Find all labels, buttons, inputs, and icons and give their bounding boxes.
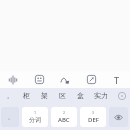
button[interactable]: 盒 — [71, 88, 89, 103]
button[interactable]: Voice input — [0, 71, 26, 88]
button[interactable]: Settings — [78, 71, 104, 88]
button[interactable]: 3 — [80, 107, 106, 127]
button[interactable]: 1 — [22, 107, 48, 127]
staticText: 3 — [92, 110, 95, 115]
staticText: 实力 — [94, 91, 108, 100]
staticText: T — [114, 74, 120, 86]
staticText: ABC — [58, 116, 70, 124]
staticText: 分词 — [29, 116, 41, 124]
staticText: 柜 — [23, 91, 30, 100]
staticText: 盒 — [77, 91, 84, 100]
button[interactable]: Expand candidates — [113, 88, 130, 103]
staticText: 区 — [59, 91, 66, 100]
button[interactable]: Stickers — [26, 71, 52, 88]
button[interactable]: 柜 — [17, 88, 35, 103]
button[interactable]: Handwriting — [52, 71, 78, 88]
button[interactable]: 实力 — [89, 88, 113, 103]
staticText: 架 — [41, 91, 48, 100]
button[interactable]: 2 — [51, 107, 77, 127]
button[interactable]: Backspace — [109, 107, 128, 127]
staticText: DEF — [88, 116, 99, 124]
staticText: 。 — [7, 92, 13, 100]
button[interactable]: 架 — [35, 88, 53, 103]
button[interactable]: 区 — [53, 88, 71, 103]
staticText: 1 — [34, 110, 37, 115]
staticText: 2 — [63, 110, 66, 115]
staticText: 。 — [8, 114, 13, 120]
button[interactable]: 。 — [3, 88, 17, 103]
button[interactable]: Text style — [104, 71, 130, 88]
